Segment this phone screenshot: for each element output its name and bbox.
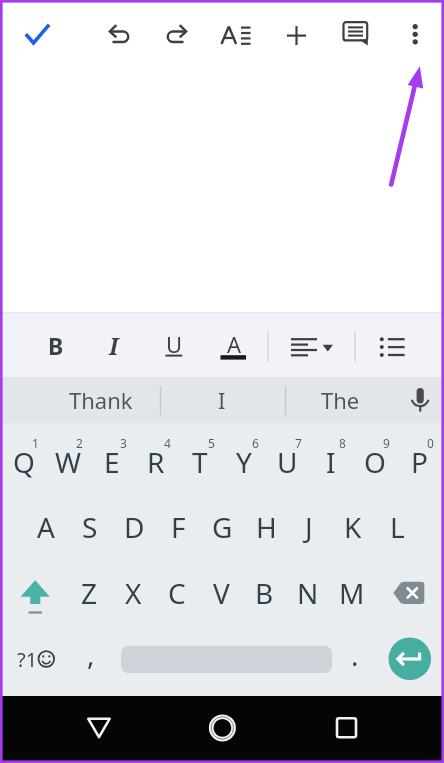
staticText: Z [81, 574, 98, 612]
button[interactable]: ?1 [7, 628, 47, 690]
button[interactable]: U [265, 431, 309, 493]
button[interactable]: C [155, 562, 199, 624]
staticText: ?1 [17, 646, 38, 673]
button[interactable] [288, 322, 336, 370]
staticText: 4 [164, 435, 171, 449]
staticText: P [411, 443, 428, 481]
button[interactable]: R [134, 431, 178, 493]
button[interactable] [153, 12, 201, 60]
staticText: A [227, 329, 242, 359]
staticText: Q [13, 443, 35, 481]
staticText: , [87, 635, 95, 673]
staticText: . [351, 636, 359, 674]
button[interactable] [331, 10, 379, 58]
button[interactable]: Thank [42, 378, 160, 422]
button[interactable]: I [309, 431, 353, 493]
button[interactable]: M [330, 562, 374, 624]
staticText: J [305, 508, 313, 546]
button[interactable]: Y [222, 431, 266, 493]
staticText: F [171, 508, 186, 546]
staticText: Y [236, 443, 252, 481]
button[interactable]: G [200, 496, 244, 558]
button[interactable]: X [111, 562, 155, 624]
staticText: 2 [76, 435, 83, 449]
button[interactable]: I [163, 378, 281, 422]
button[interactable]: I [90, 321, 138, 369]
staticText: N [297, 574, 319, 612]
staticText: 1 [32, 435, 39, 449]
button[interactable] [209, 12, 257, 60]
staticText: W [55, 443, 82, 481]
staticText: I [326, 443, 336, 481]
button[interactable]: D [112, 496, 156, 558]
button[interactable]: F [156, 496, 200, 558]
staticText: U [166, 329, 183, 359]
staticText: B [48, 330, 64, 361]
button[interactable] [13, 12, 61, 60]
button[interactable]: U [150, 320, 198, 368]
staticText: 7 [295, 435, 302, 449]
button[interactable]: O [353, 431, 397, 493]
button[interactable]: P [397, 431, 441, 493]
button[interactable]: . [337, 624, 373, 686]
staticText: 6 [252, 435, 259, 449]
button[interactable]: V [199, 562, 243, 624]
staticText: H [256, 508, 277, 546]
button[interactable]: H [244, 496, 288, 558]
button[interactable]: B [32, 321, 80, 369]
button[interactable] [272, 12, 320, 60]
button[interactable] [388, 637, 432, 681]
button[interactable]: S [68, 496, 112, 558]
staticText: U [277, 443, 298, 481]
button[interactable]: The [287, 378, 393, 422]
button[interactable] [398, 378, 442, 422]
button[interactable] [366, 322, 414, 370]
button[interactable] [385, 562, 433, 624]
staticText: B [255, 574, 274, 612]
button[interactable] [11, 562, 59, 624]
button[interactable]: K [331, 496, 375, 558]
button[interactable]: T [178, 431, 222, 493]
staticText: C [168, 574, 186, 612]
staticText: The [321, 385, 360, 415]
staticText: V [213, 574, 230, 612]
staticText: K [344, 508, 362, 546]
button[interactable]: A [210, 320, 258, 368]
staticText: I [109, 330, 119, 361]
button[interactable] [187, 700, 257, 756]
staticText: E [104, 443, 120, 481]
button[interactable] [64, 700, 134, 756]
button[interactable]: A [24, 496, 68, 558]
staticText: M [339, 574, 365, 612]
staticText: 9 [383, 435, 390, 449]
button[interactable]: , [73, 623, 109, 685]
button[interactable]: J [287, 496, 331, 558]
button[interactable]: E [90, 431, 134, 493]
button[interactable]: L [375, 496, 419, 558]
button[interactable] [311, 700, 381, 756]
staticText: 3 [120, 435, 127, 449]
button[interactable]: B [242, 562, 286, 624]
staticText: 5 [208, 435, 215, 449]
staticText: S [82, 508, 98, 546]
staticText: D [124, 508, 145, 546]
staticText: O [364, 443, 386, 481]
staticText: Thank [69, 385, 133, 415]
staticText: G [212, 508, 233, 546]
staticText: T [192, 443, 208, 481]
button[interactable]: W [46, 431, 90, 493]
staticText: I [218, 385, 226, 415]
button[interactable]: Z [67, 562, 111, 624]
staticText: 0 [427, 435, 434, 449]
button[interactable] [391, 10, 439, 58]
button[interactable]: Q [2, 431, 46, 493]
button[interactable] [95, 12, 143, 60]
staticText: 8 [339, 435, 346, 449]
staticText: X [125, 574, 142, 612]
staticText: L [390, 508, 405, 546]
button[interactable]: N [286, 562, 330, 624]
staticText: R [147, 443, 165, 481]
staticText: A [37, 508, 55, 546]
